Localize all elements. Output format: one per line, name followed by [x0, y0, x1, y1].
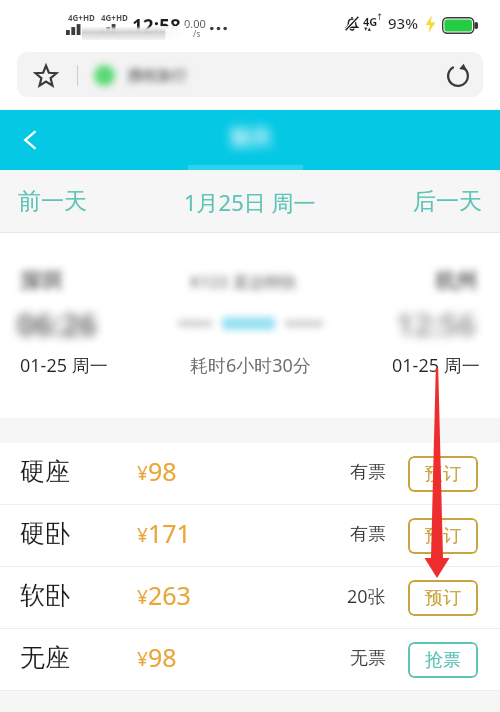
staticText: 硬卧	[20, 518, 70, 549]
button[interactable]: 后一天	[405, 181, 490, 222]
button[interactable]: 无座	[0, 629, 500, 690]
staticText: 263	[148, 578, 191, 612]
staticText: 1月25日 周一	[184, 187, 316, 217]
button[interactable]: 预订	[408, 518, 478, 554]
staticText: 预订	[425, 463, 461, 486]
staticText: 98	[148, 640, 177, 674]
button[interactable]: 前一天	[10, 181, 95, 222]
staticText: 预订	[425, 525, 461, 548]
button[interactable]: 软卧	[0, 567, 500, 628]
staticText: 12:58	[132, 13, 181, 39]
staticText: ¥	[137, 460, 148, 486]
staticText: ¥	[137, 522, 148, 548]
button[interactable]: 预订	[408, 456, 478, 492]
button[interactable]: 抢票	[408, 642, 478, 678]
staticText: 20张	[347, 584, 386, 609]
staticText: 后一天	[413, 187, 482, 216]
staticText: 携程旅行	[127, 67, 187, 86]
staticText: 01-25 周一	[20, 353, 108, 378]
staticText: 硬座	[20, 456, 70, 487]
staticText: 0.00	[184, 16, 206, 31]
staticText: ¥	[137, 646, 148, 672]
staticText: 前一天	[18, 187, 87, 216]
button[interactable]: Refresh	[442, 60, 473, 91]
staticText: 无座	[20, 642, 70, 673]
staticText: 有票	[350, 523, 386, 546]
button[interactable]: 1月25日 周一	[176, 181, 324, 223]
staticText: 06:26	[17, 303, 97, 345]
staticText: 深圳	[20, 268, 62, 294]
staticText: 171	[148, 516, 191, 550]
button[interactable]	[17, 52, 483, 97]
staticText: 有票	[350, 461, 386, 484]
staticText: 4G+HD	[101, 12, 128, 23]
button[interactable]: 预订	[408, 580, 478, 616]
staticText: 软卧	[20, 580, 70, 611]
button[interactable]: Back	[6, 116, 54, 164]
staticText: 预订	[425, 587, 461, 610]
staticText: ↑	[376, 12, 384, 22]
staticText: 韶关	[230, 125, 272, 151]
button[interactable]: Bookmark	[31, 61, 61, 91]
staticText: 12:56	[396, 303, 476, 345]
staticText: K123 直达特快	[190, 271, 297, 293]
staticText: 98	[148, 454, 177, 488]
staticText: ▾▴	[364, 25, 372, 33]
staticText: 4G+HD	[68, 12, 95, 23]
button[interactable]: 硬卧	[0, 505, 500, 566]
staticText: 4G	[363, 14, 378, 29]
staticText: 01-25 周一	[392, 353, 480, 378]
staticText: 耗时6小时30分	[190, 353, 311, 378]
staticText: 93%	[388, 13, 418, 33]
staticText: 杭州	[435, 268, 477, 294]
staticText: 抢票	[425, 649, 461, 672]
button[interactable]: 硬座	[0, 443, 500, 504]
staticText: /s	[193, 27, 201, 39]
staticText: 无票	[350, 647, 386, 670]
staticText: ¥	[137, 584, 148, 610]
